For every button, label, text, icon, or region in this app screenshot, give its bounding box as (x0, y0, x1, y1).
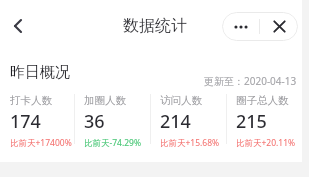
staticText: 加圈人数 (84, 94, 126, 107)
staticText: 比前天-74.29% (84, 137, 142, 149)
button[interactable]: 圈子总人数 (227, 94, 302, 154)
staticText: 访问人数 (160, 94, 202, 107)
button[interactable]: 加圈人数 (75, 94, 150, 154)
staticText: 比前天+20.11% (236, 137, 296, 149)
staticText: 打卡人数 (10, 94, 52, 107)
button[interactable]: Close (260, 12, 298, 41)
staticText: 215 (236, 109, 267, 134)
staticText: 数据统计 (123, 16, 187, 36)
button[interactable]: More options (222, 12, 259, 41)
staticText: 比前天+17400% (10, 137, 72, 149)
button[interactable]: 访问人数 (151, 94, 226, 154)
staticText: 36 (84, 109, 105, 134)
staticText: 214 (160, 109, 191, 134)
button[interactable]: Back (2, 9, 36, 43)
staticText: 更新至：2020-04-13 (204, 74, 297, 88)
staticText: 比前天+15.68% (160, 137, 220, 149)
staticText: 174 (10, 109, 41, 134)
staticText: 昨日概况 (10, 63, 70, 82)
button[interactable]: 打卡人数 (0, 94, 74, 154)
staticText: 圈子总人数 (236, 94, 289, 107)
